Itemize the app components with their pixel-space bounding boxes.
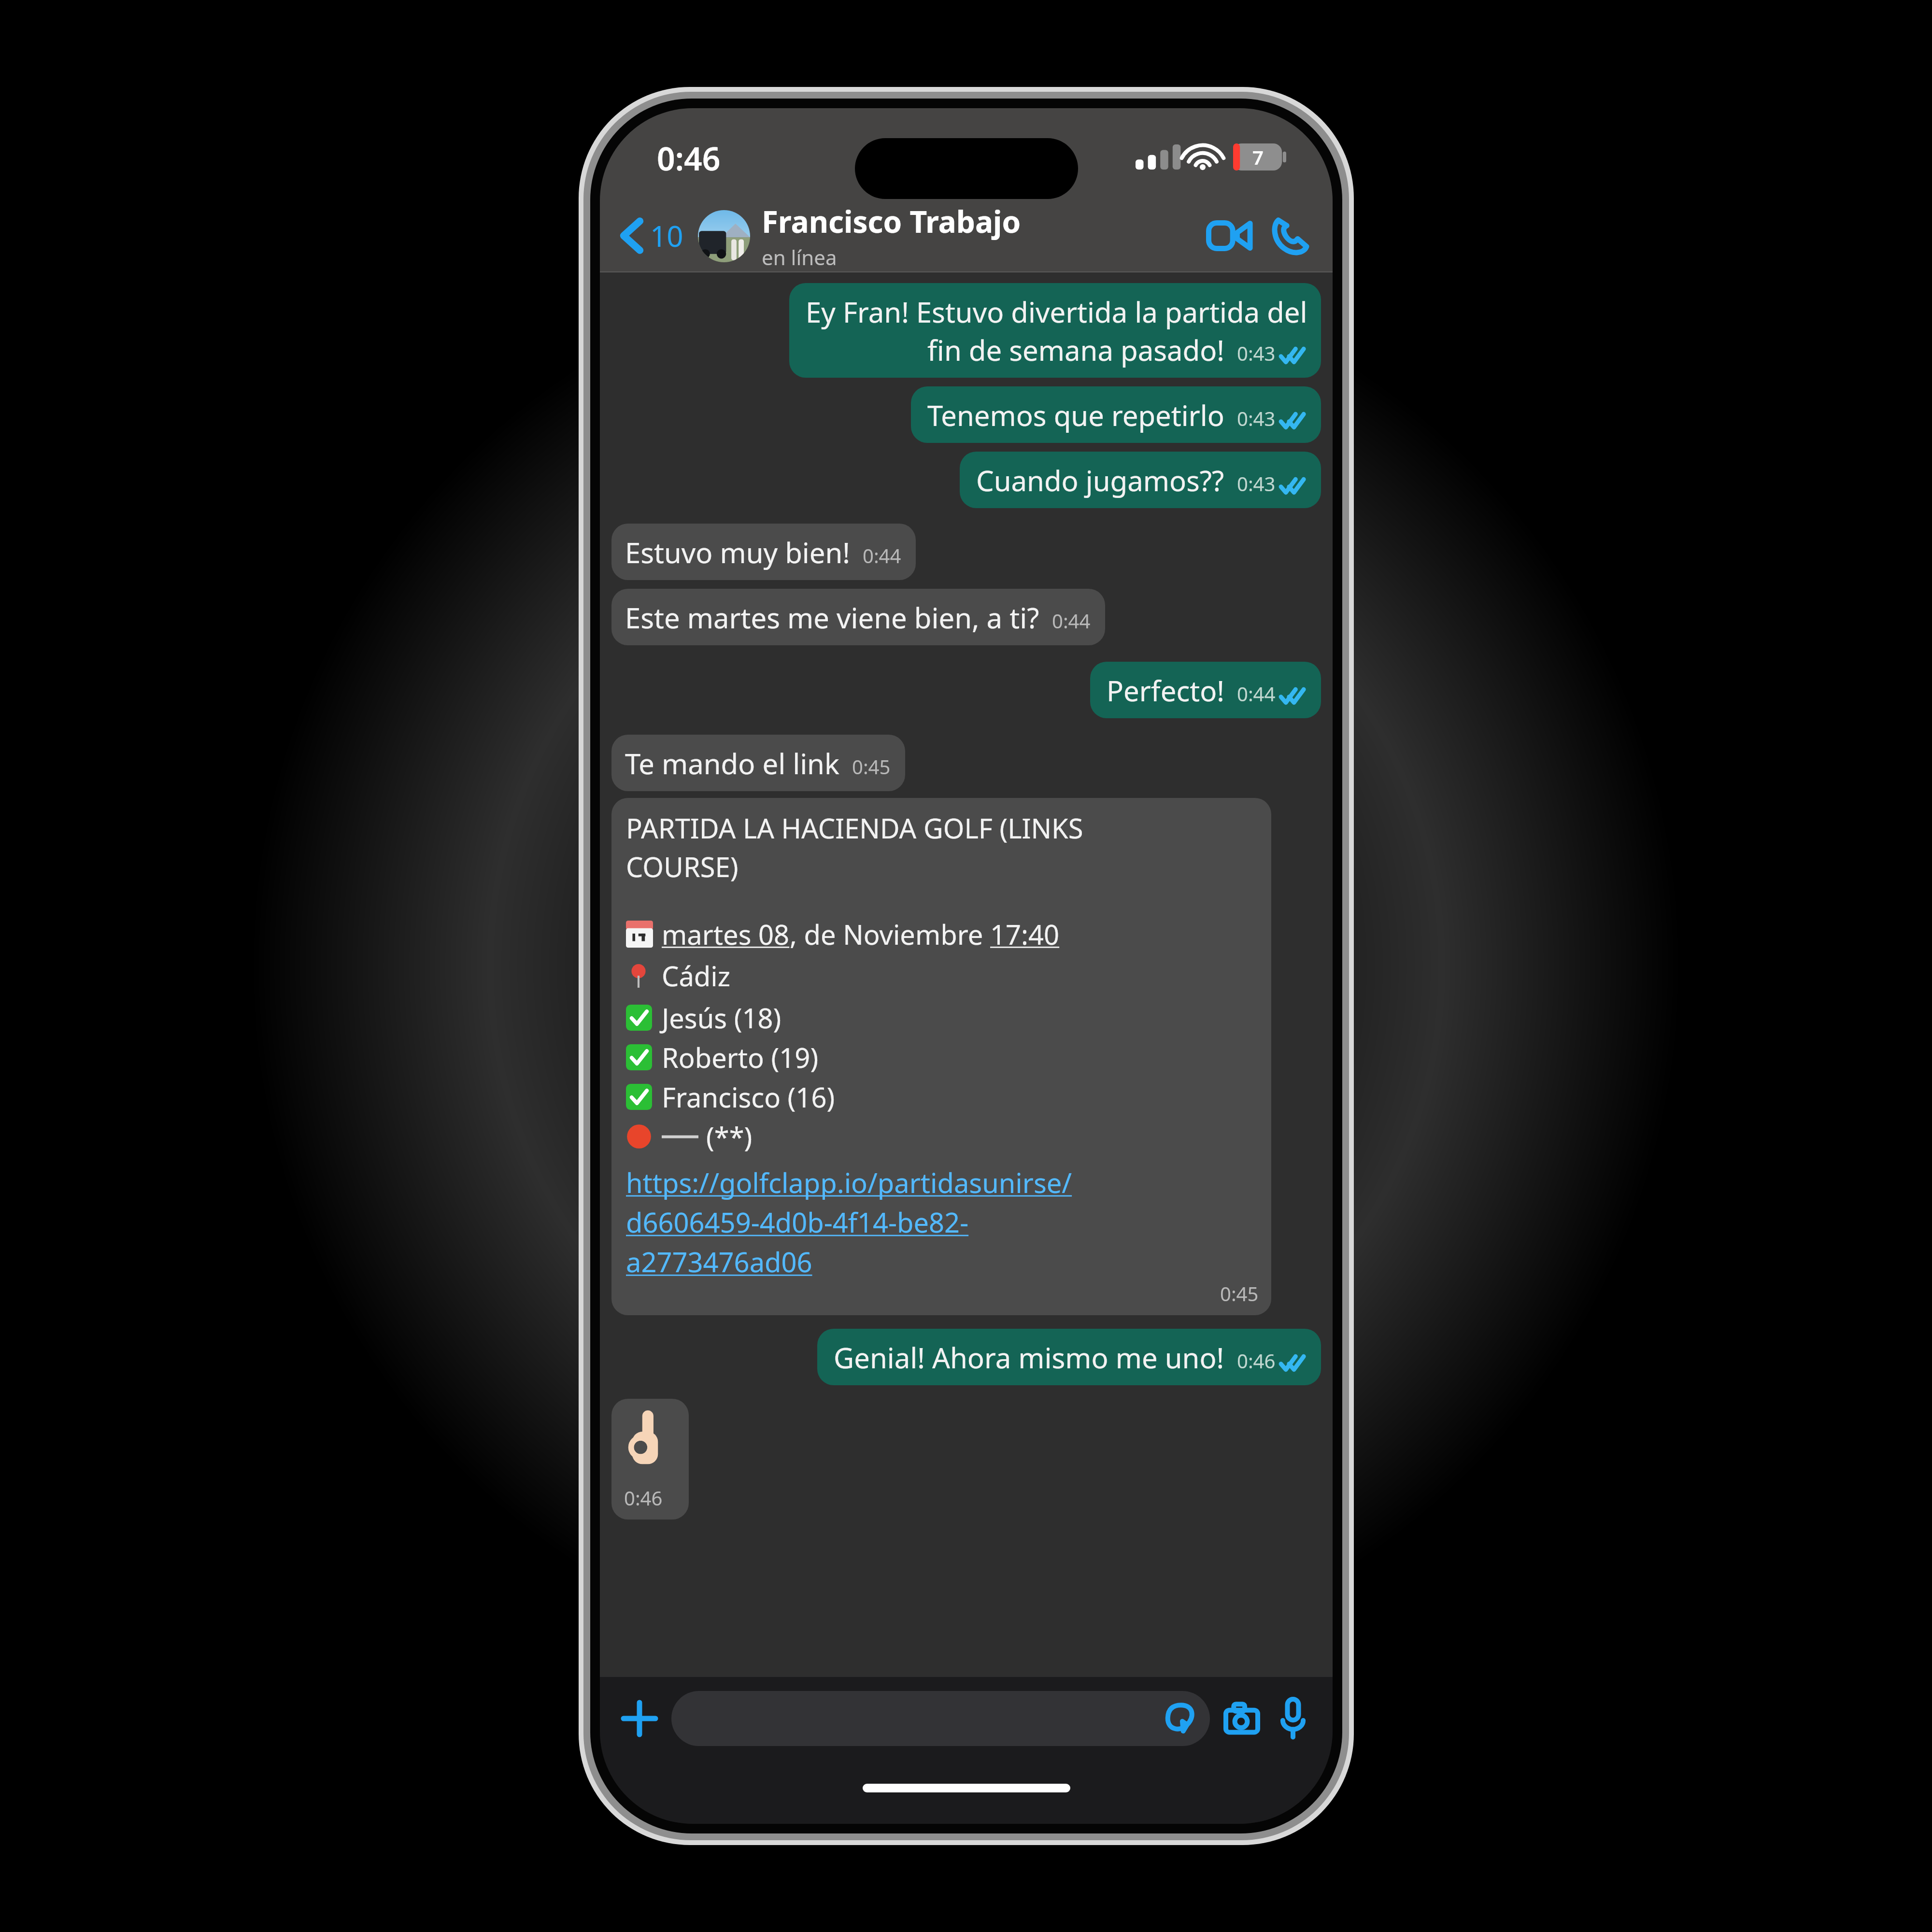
button[interactable]: Este martes me viene bien, a ti? — [611, 589, 1105, 645]
staticText: Francisco Trabajo — [762, 201, 1021, 241]
staticText: 17:40 — [990, 916, 1060, 952]
staticText: 0:45 — [852, 753, 891, 780]
staticText: , de Noviembre — [790, 916, 990, 952]
staticText: 0:46 — [1237, 1348, 1276, 1374]
button[interactable]: Camera — [1219, 1695, 1265, 1742]
button[interactable]: Tenemos que repetirlo — [911, 386, 1321, 443]
staticText: Te mando el link — [625, 744, 839, 782]
staticText: 0:45 — [1220, 1280, 1259, 1307]
button[interactable]: Te mando el link — [611, 735, 905, 791]
button[interactable]: Perfecto! — [1090, 662, 1321, 718]
staticText: Ey Fran! Estuvo divertida la partida del — [806, 293, 1307, 331]
staticText: 0:43 — [1237, 340, 1276, 366]
button[interactable]: Estuvo muy bien! — [611, 524, 916, 580]
staticText: Cádiz — [662, 957, 731, 994]
button[interactable]: PARTIDA LA HACIENDA GOLF (LINKS COURSE) — [611, 798, 1271, 1315]
staticText: fin de semana pasado! — [927, 331, 1224, 369]
staticText: 0:44 — [1237, 681, 1276, 707]
staticText: 0:46 — [657, 136, 721, 180]
button[interactable]: Video call — [1201, 209, 1255, 263]
staticText: 0:46 — [624, 1485, 663, 1511]
button[interactable]: Attach — [616, 1695, 663, 1742]
button[interactable]: Stickers — [1164, 1701, 1198, 1736]
staticText: Genial! Ahora mismo me uno! — [834, 1338, 1224, 1377]
staticText: Estuvo muy bien! — [625, 533, 850, 571]
staticText: Francisco (16) — [662, 1079, 835, 1115]
staticText: 0:44 — [863, 542, 901, 568]
staticText: 0:43 — [1237, 470, 1276, 497]
button[interactable]: Ey Fran! Estuvo divertida la partida del — [789, 283, 1321, 378]
staticText: (**) — [706, 1118, 753, 1155]
button[interactable]: Cuando jugamos?? — [960, 452, 1321, 508]
staticText: Tenemos que repetirlo — [927, 396, 1224, 434]
staticText: martes 08 — [662, 916, 790, 952]
button[interactable]: Stickers — [671, 1691, 1210, 1746]
button[interactable]: Back, 10 unread — [617, 209, 687, 262]
button[interactable]: Voice message — [1270, 1695, 1316, 1742]
staticText: 10 — [650, 216, 683, 256]
button[interactable]: Voice call — [1263, 210, 1315, 262]
staticText: Roberto (19) — [662, 1039, 819, 1076]
staticText: en línea — [762, 243, 837, 271]
staticText: Este martes me viene bien, a ti? — [625, 598, 1039, 637]
button[interactable]: 0:46 — [611, 1399, 689, 1520]
button[interactable]: Genial! Ahora mismo me uno! — [817, 1329, 1321, 1385]
staticText: Jesús (18) — [662, 999, 781, 1036]
staticText: Perfecto! — [1107, 671, 1224, 710]
staticText: 0:44 — [1052, 608, 1091, 634]
staticText: 0:43 — [1237, 405, 1276, 431]
staticText: https://golfclapp.io/partidasunirse/ d66… — [626, 1164, 1072, 1280]
staticText: Cuando jugamos?? — [976, 461, 1224, 499]
staticText: PARTIDA LA HACIENDA GOLF (LINKS COURSE) — [626, 810, 1083, 885]
staticText: 7 — [1252, 144, 1264, 170]
button[interactable]: Francisco Trabajo — [698, 201, 1201, 271]
